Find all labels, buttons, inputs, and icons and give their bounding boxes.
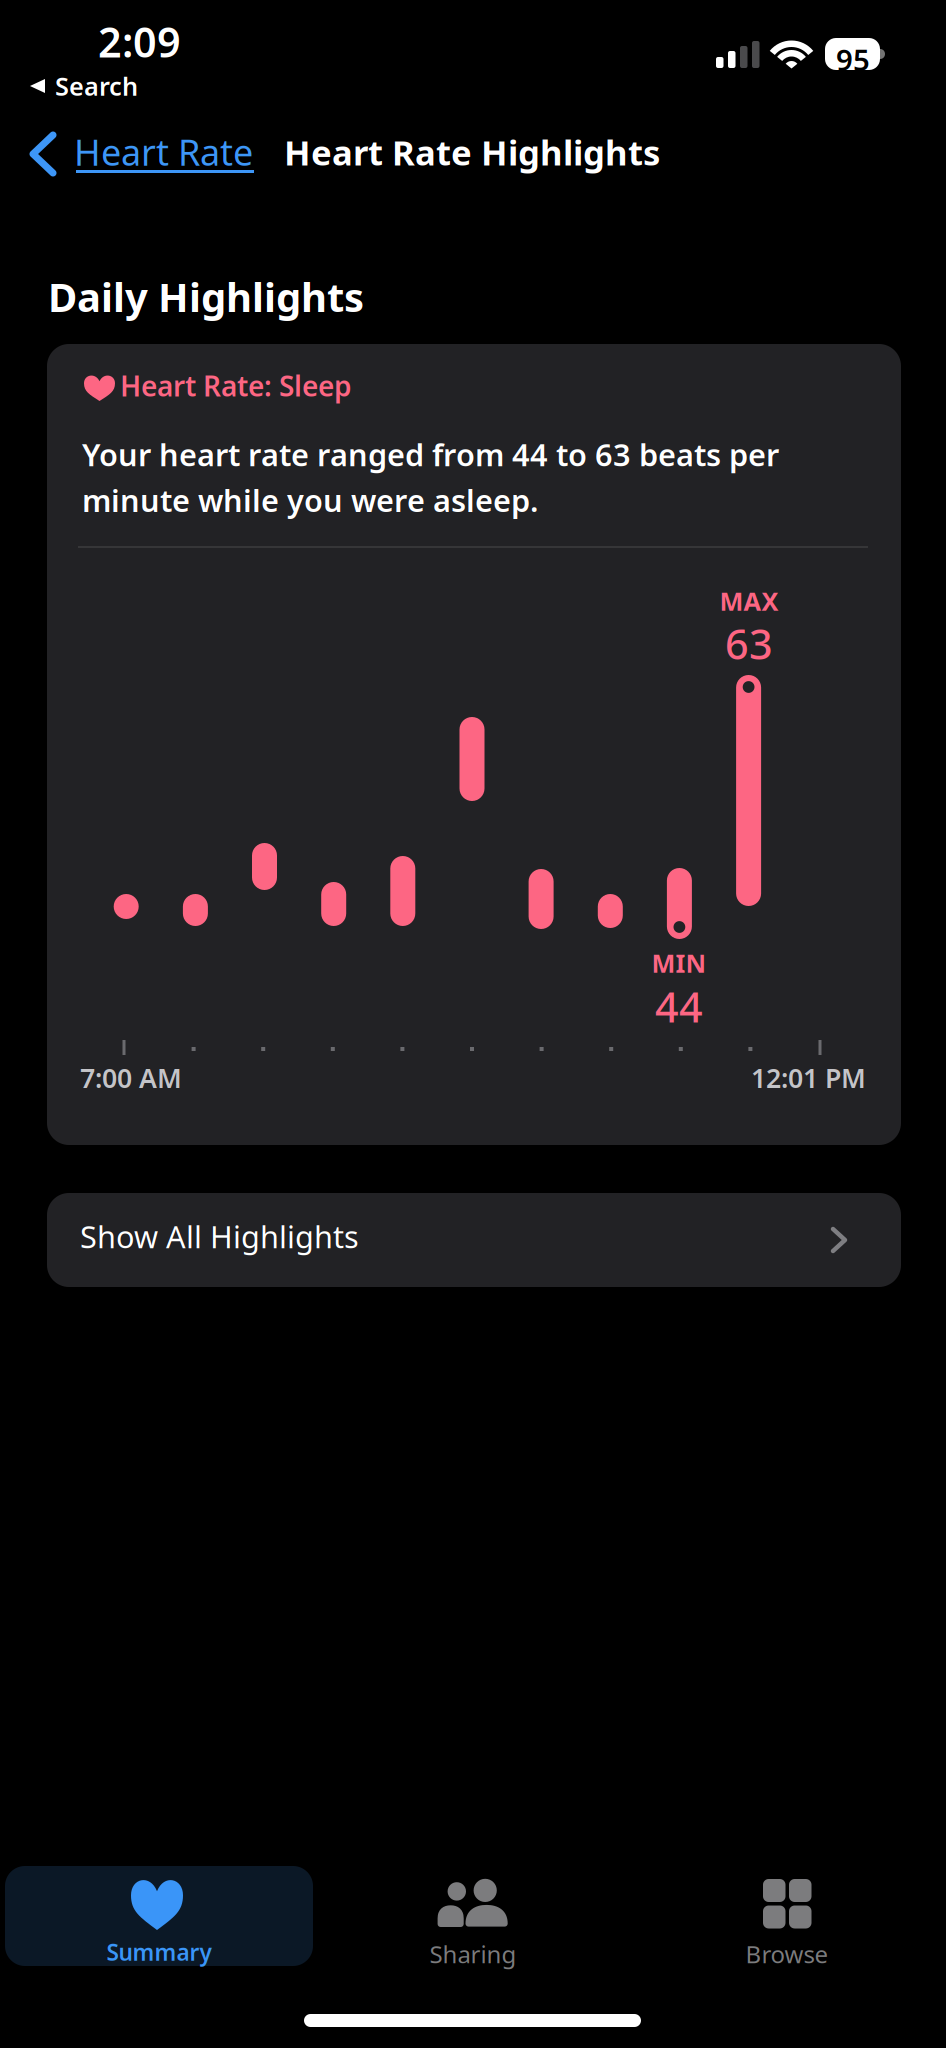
staticText: Summary: [106, 1937, 211, 1967]
staticText: Heart Rate: Sleep: [120, 367, 352, 404]
staticText: Daily Highlights: [48, 270, 364, 323]
staticText: 44: [655, 979, 703, 1034]
staticText: Heart Rate Highlights: [284, 129, 660, 175]
staticText: Heart Rate: [74, 128, 253, 176]
staticText: 95: [836, 40, 870, 79]
staticText: 2:09: [98, 14, 181, 69]
button[interactable]: Heart Rate: [0, 112, 262, 200]
staticText: Your heart rate ranged from 44 to 63 bea…: [82, 434, 779, 520]
staticText: Browse: [745, 1938, 828, 1970]
button[interactable]: Sharing: [319, 1866, 627, 1966]
staticText: MIN: [651, 946, 706, 980]
staticText: Sharing: [429, 1938, 516, 1970]
staticText: Show All Highlights: [80, 1216, 359, 1257]
staticText: 7:00 AM: [80, 1060, 182, 1095]
staticText: MAX: [719, 584, 778, 618]
staticText: Search: [55, 69, 138, 103]
button[interactable]: Browse: [633, 1866, 941, 1966]
staticText: 12:01 PM: [751, 1060, 866, 1095]
button[interactable]: Summary: [5, 1866, 313, 1966]
button[interactable]: Show All Highlights: [47, 1193, 901, 1287]
staticText: 63: [725, 616, 773, 671]
button[interactable]: Search: [20, 69, 160, 105]
